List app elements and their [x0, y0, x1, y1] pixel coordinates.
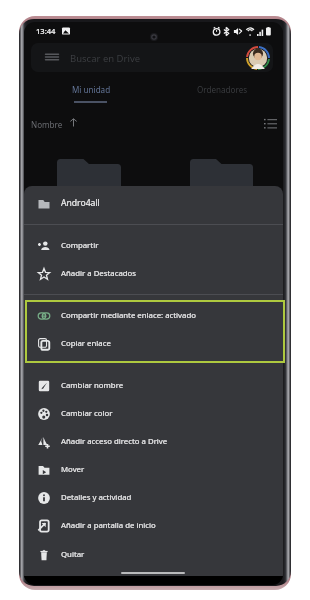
staticText: Ordenadores: [197, 84, 248, 95]
button[interactable]: [31, 43, 273, 72]
button[interactable]: Añadir acceso directo a Drive: [24, 428, 283, 456]
button[interactable]: [160, 78, 280, 100]
button[interactable]: Añadir a pantalla de inicio: [24, 512, 283, 540]
button[interactable]: Account: [246, 46, 270, 70]
staticText: Añadir a pantalla de inicio: [61, 520, 156, 531]
staticText: Quitar: [61, 549, 85, 560]
button[interactable]: Switch to list view: [264, 118, 277, 129]
staticText: Copiar enlace: [61, 338, 111, 349]
button[interactable]: Cambiar nombre: [24, 372, 283, 400]
button[interactable]: Cambiar color: [24, 400, 283, 428]
staticText: Mover: [61, 464, 85, 475]
button[interactable]: Open navigation menu: [45, 50, 59, 64]
staticText: Buscar en Drive: [70, 52, 141, 65]
button[interactable]: Andro4all: [24, 190, 283, 218]
button[interactable]: Quitar: [24, 541, 283, 569]
staticText: Detalles y actividad: [61, 492, 132, 503]
button[interactable]: [190, 159, 253, 189]
staticText: Nombre: [31, 119, 63, 130]
staticText: Añadir acceso directo a Drive: [61, 436, 168, 447]
button[interactable]: Añadir a Destacados: [24, 260, 283, 288]
staticText: Compartir: [61, 240, 99, 251]
button[interactable]: Compartir: [24, 232, 283, 260]
button[interactable]: [32, 78, 154, 100]
button[interactable]: Copiar enlace: [24, 330, 283, 358]
button[interactable]: Detalles y actividad: [24, 484, 283, 512]
staticText: Compartir mediante enlace: activado: [61, 310, 196, 321]
staticText: Mi unidad: [72, 84, 111, 95]
staticText: Cambiar color: [61, 408, 113, 419]
button[interactable]: Mover: [24, 456, 283, 484]
staticText: Andro4all: [61, 197, 100, 209]
staticText: Añadir a Destacados: [61, 268, 137, 279]
button[interactable]: [57, 159, 121, 189]
staticText: Cambiar nombre: [61, 380, 124, 391]
staticText: 13:44: [36, 26, 56, 36]
button[interactable]: Compartir mediante enlace: activado: [24, 302, 283, 330]
